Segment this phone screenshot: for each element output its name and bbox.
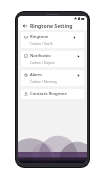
- staticText: Carbon / Starlit: [30, 42, 53, 46]
- staticText: Notification Sound: [30, 53, 53, 59]
- button[interactable]: Open: [72, 35, 77, 40]
- button[interactable]: Alarm Sound: [21, 70, 84, 86]
- button[interactable]: Open: [76, 73, 81, 78]
- button[interactable]: Notification Sound: [21, 51, 84, 67]
- staticText: Ringtone Setting: [30, 22, 73, 29]
- staticText: Contacts Ringtone: [30, 91, 67, 97]
- button[interactable]: Ringtone: [21, 32, 84, 48]
- staticText: Carbon / Dayout: [30, 61, 55, 65]
- button[interactable]: Back: [21, 22, 28, 29]
- staticText: Carbon / Morning: [30, 80, 57, 84]
- staticText: Alarm Sound: [30, 72, 53, 78]
- button[interactable]: Contacts Ringtone: [21, 89, 84, 99]
- button[interactable]: Open: [76, 54, 81, 59]
- staticText: Ringtone: [30, 34, 49, 40]
